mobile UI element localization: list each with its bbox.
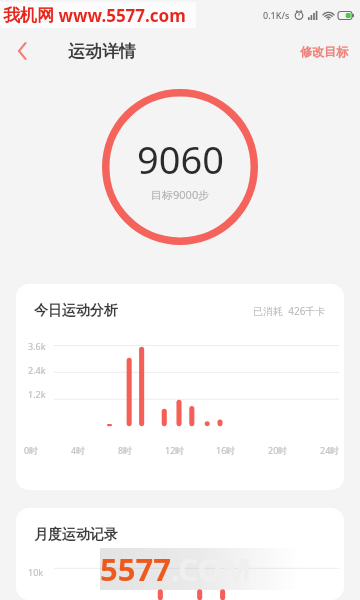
staticText: 16时 — [216, 444, 236, 456]
button[interactable]: 月度运动记录 — [16, 508, 344, 600]
button[interactable]: 修改目标 — [288, 36, 360, 67]
button[interactable]: Back — [0, 30, 44, 72]
staticText: 3.6k — [28, 340, 46, 352]
staticText: www.5577.com — [54, 4, 186, 27]
staticText: 20时 — [268, 444, 288, 456]
staticText: 已消耗 426千卡 — [253, 304, 326, 318]
staticText: 8时 — [118, 444, 133, 456]
staticText: 5577 — [100, 548, 171, 590]
staticText: 24时 — [320, 444, 340, 456]
staticText: 目标9000步 — [151, 187, 210, 202]
staticText: 月度运动记录 — [34, 526, 118, 544]
staticText: 12时 — [165, 444, 185, 456]
staticText: 修改目标 — [300, 44, 348, 59]
staticText: 0时 — [24, 444, 39, 456]
staticText: 运动详情 — [68, 41, 136, 62]
staticText: 今日运动分析 — [34, 302, 118, 320]
button[interactable]: 今日运动分析 — [16, 284, 344, 490]
staticText: 0.1K/s — [263, 9, 290, 21]
staticText: .COM — [171, 548, 252, 590]
staticText: 1.2k — [28, 388, 46, 400]
staticText: 4时 — [71, 444, 86, 456]
staticText: 2.4k — [28, 364, 46, 376]
staticText: 10k — [28, 566, 44, 578]
staticText: 9060 — [137, 133, 224, 185]
staticText: 我机网 — [3, 5, 54, 26]
